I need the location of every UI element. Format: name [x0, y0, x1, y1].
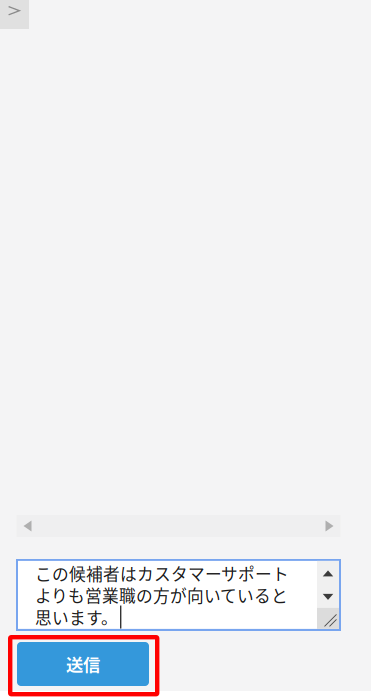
staticText: この候補者はカスタマーサポート	[35, 561, 289, 585]
button[interactable]: Expand panel	[0, 0, 29, 29]
staticText: 送信	[66, 651, 100, 677]
staticText: よりも営業職の方が向いていると	[35, 583, 288, 607]
button[interactable]: 送信	[17, 642, 149, 686]
staticText: 思います。	[35, 605, 118, 629]
